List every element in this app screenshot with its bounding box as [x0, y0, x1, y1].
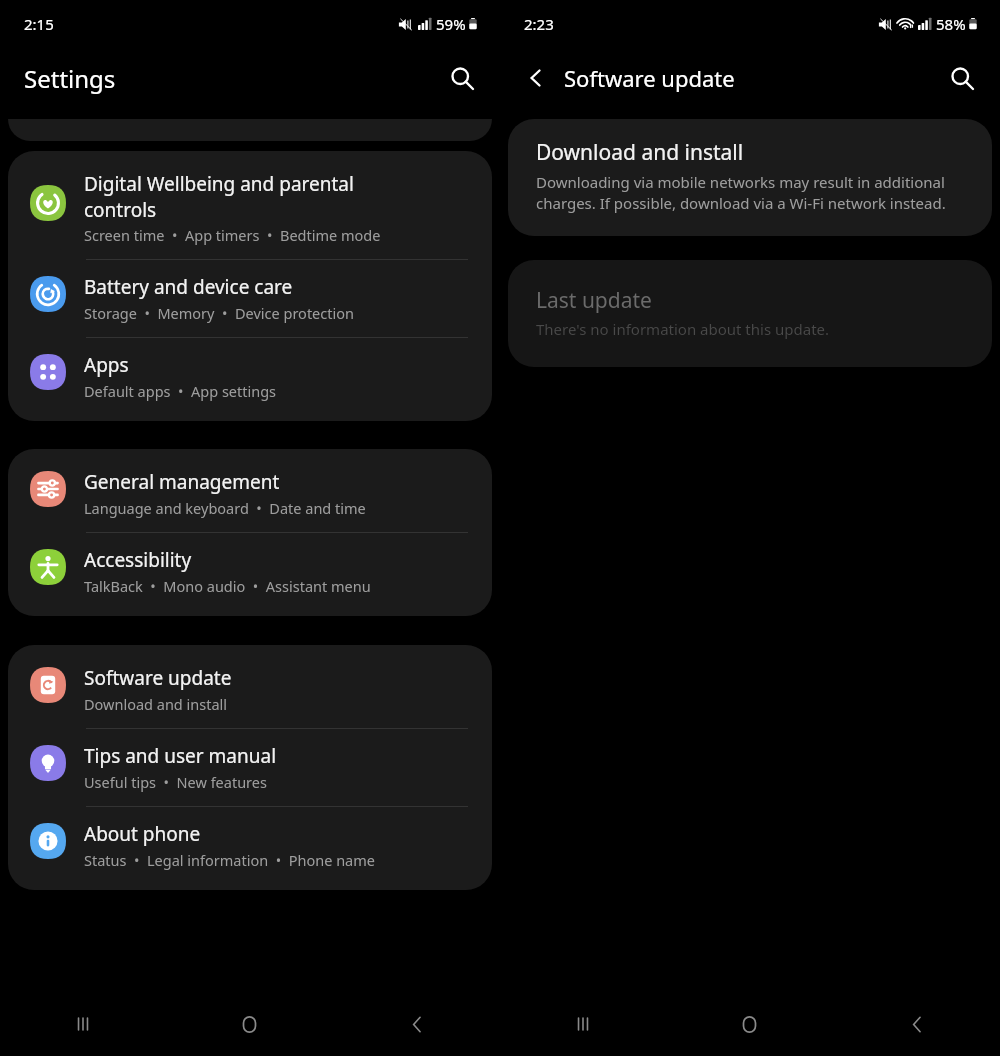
- button[interactable]: General management: [8, 455, 492, 532]
- staticText: 58%: [936, 14, 966, 34]
- staticText: About phone: [84, 821, 201, 847]
- button[interactable]: Recents: [500, 992, 666, 1056]
- button[interactable]: Recents: [0, 992, 166, 1056]
- staticText: Default apps • App settings: [84, 381, 277, 401]
- staticText: Downloading via mobile networks may resu…: [536, 172, 968, 214]
- button[interactable]: Battery and device care: [8, 260, 492, 337]
- staticText: Download and install: [84, 694, 228, 714]
- button[interactable]: Accessibility: [8, 533, 492, 610]
- staticText: Accessibility: [84, 547, 192, 573]
- button[interactable]: [8, 119, 492, 141]
- staticText: There's no information about this update…: [536, 319, 830, 339]
- button[interactable]: Tips and user manual: [8, 729, 492, 806]
- staticText: Storage • Memory • Device protection: [84, 303, 354, 323]
- button[interactable]: Search: [438, 54, 486, 102]
- button[interactable]: Home: [166, 992, 333, 1056]
- staticText: Useful tips • New features: [84, 772, 267, 792]
- staticText: Language and keyboard • Date and time: [84, 498, 366, 518]
- button[interactable]: Download and install: [508, 119, 992, 236]
- staticText: Tips and user manual: [84, 743, 277, 769]
- button[interactable]: Software update: [8, 651, 492, 728]
- button[interactable]: Back: [333, 992, 500, 1056]
- button[interactable]: Back: [833, 992, 1000, 1056]
- staticText: Software update: [564, 63, 735, 93]
- staticText: Screen time • App timers • Bedtime mode: [84, 225, 381, 245]
- staticText: Battery and device care: [84, 274, 293, 300]
- button[interactable]: Last update: [508, 260, 992, 367]
- staticText: 2:23: [524, 14, 554, 34]
- staticText: TalkBack • Mono audio • Assistant menu: [84, 576, 371, 596]
- staticText: Status • Legal information • Phone name: [84, 850, 375, 870]
- button[interactable]: About phone: [8, 807, 492, 884]
- staticText: General management: [84, 469, 280, 495]
- button[interactable]: Apps: [8, 338, 492, 415]
- staticText: Last update: [536, 286, 652, 315]
- button[interactable]: Digital Wellbeing and parental controls: [8, 157, 492, 259]
- button[interactable]: Search: [938, 54, 986, 102]
- staticText: 2:15: [24, 14, 54, 34]
- staticText: Apps: [84, 352, 129, 378]
- staticText: Settings: [24, 62, 116, 95]
- staticText: Software update: [84, 665, 232, 691]
- button[interactable]: Home: [666, 992, 833, 1056]
- button[interactable]: Back: [512, 54, 560, 102]
- staticText: Digital Wellbeing and parental controls: [84, 171, 354, 222]
- staticText: 59%: [436, 14, 466, 34]
- staticText: Download and install: [536, 138, 744, 167]
